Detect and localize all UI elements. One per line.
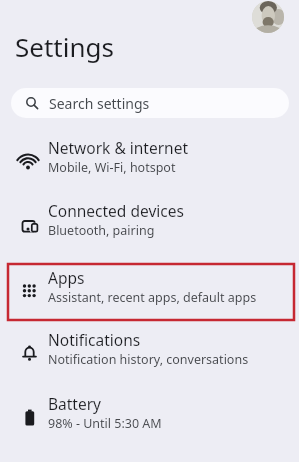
staticText: Apps xyxy=(48,267,85,288)
staticText: Notification history, conversations xyxy=(48,351,249,368)
button[interactable]: Apps xyxy=(0,258,299,320)
staticText: Notifications xyxy=(48,329,141,350)
staticText: Network & internet xyxy=(48,137,188,158)
staticText: Mobile, Wi-Fi, hotspot xyxy=(48,159,176,176)
staticText: Connected devices xyxy=(48,200,184,221)
button[interactable] xyxy=(252,1,284,33)
button[interactable]: Connected devices xyxy=(0,191,299,253)
staticText: Search settings xyxy=(49,94,150,113)
staticText: Bluetooth, pairing xyxy=(48,222,155,239)
staticText: 98% - Until 5:30 AM xyxy=(48,415,162,432)
button[interactable]: Search settings xyxy=(11,88,289,118)
staticText: Battery xyxy=(48,393,102,414)
staticText: Settings xyxy=(15,29,114,64)
staticText: Assistant, recent apps, default apps xyxy=(48,289,257,306)
button[interactable]: Battery xyxy=(0,384,299,446)
button[interactable]: Notifications xyxy=(0,320,299,382)
button[interactable]: Network & internet xyxy=(0,128,299,190)
